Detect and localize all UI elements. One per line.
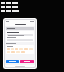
button[interactable]: [15, 48, 18, 50]
button[interactable]: [11, 48, 14, 50]
button[interactable]: [6, 27, 34, 30]
button[interactable]: [21, 51, 25, 53]
button[interactable]: [7, 48, 10, 50]
button[interactable]: [7, 34, 33, 36]
button[interactable]: [16, 51, 20, 53]
button[interactable]: [11, 51, 15, 53]
button[interactable]: Primary action: [6, 60, 19, 63]
button[interactable]: [7, 51, 10, 53]
button[interactable]: [24, 48, 28, 50]
button[interactable]: [29, 48, 33, 50]
button[interactable]: [19, 48, 23, 50]
button[interactable]: [5, 23, 35, 26]
button[interactable]: Secondary action: [20, 60, 34, 63]
